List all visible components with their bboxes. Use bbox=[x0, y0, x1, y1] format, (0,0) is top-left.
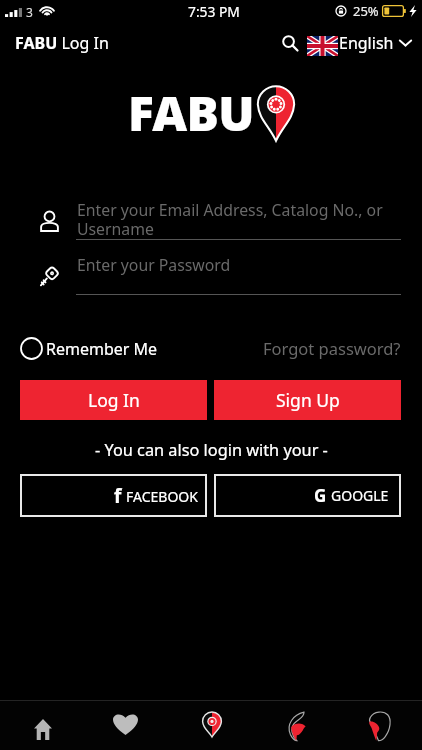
button[interactable]: Styles bbox=[254, 701, 338, 750]
button[interactable]: Near me bbox=[170, 701, 254, 750]
button[interactable]: FABU Log In bbox=[0, 26, 115, 60]
button[interactable]: Home bbox=[0, 701, 85, 750]
staticText: Log In bbox=[88, 388, 140, 412]
button[interactable]: Search bbox=[275, 28, 305, 58]
staticText: Forgot password? bbox=[263, 337, 401, 359]
staticText: FACEBOOK bbox=[126, 487, 198, 506]
staticText: FABU bbox=[128, 80, 255, 145]
staticText: f bbox=[114, 483, 122, 509]
button[interactable]: G bbox=[214, 474, 401, 517]
button[interactable]: English bbox=[305, 32, 422, 54]
staticText: G bbox=[314, 484, 327, 507]
button[interactable]: Sign Up bbox=[214, 380, 401, 420]
button[interactable]: Log In bbox=[20, 380, 207, 420]
button[interactable]: Profile bbox=[338, 701, 422, 750]
staticText: 7:53 PM bbox=[188, 2, 240, 21]
staticText: - You can also login with your - bbox=[95, 439, 328, 461]
staticText: Sign Up bbox=[276, 388, 340, 412]
staticText: Enter your Password bbox=[77, 254, 231, 276]
button[interactable]: Remember Me bbox=[14, 334, 164, 363]
staticText: FABU Log In bbox=[15, 32, 109, 54]
staticText: Enter your Email Address, Catalog No., o… bbox=[77, 199, 402, 240]
staticText: English bbox=[339, 32, 394, 54]
staticText: Remember Me bbox=[46, 338, 158, 360]
staticText: GOOGLE bbox=[331, 486, 389, 505]
button[interactable]: f bbox=[20, 474, 207, 517]
staticText: 25% bbox=[353, 2, 379, 20]
button[interactable]: Favorites bbox=[85, 701, 170, 750]
button[interactable]: Forgot password? bbox=[249, 333, 422, 363]
staticText: 3 bbox=[26, 4, 33, 20]
